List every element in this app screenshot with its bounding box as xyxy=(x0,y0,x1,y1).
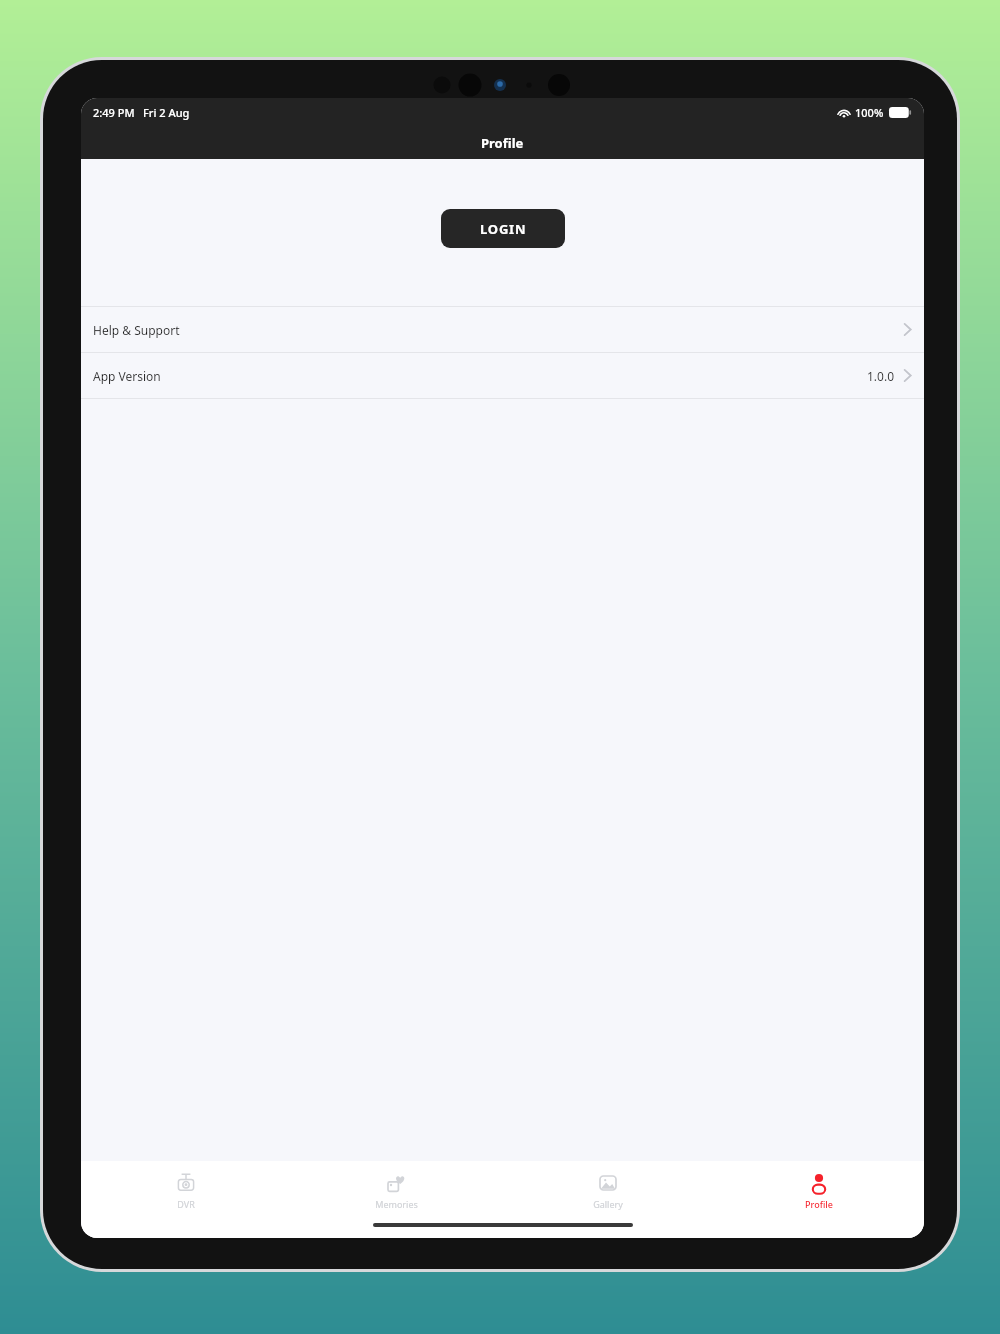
button[interactable]: Gallery xyxy=(502,1161,713,1221)
button[interactable]: Profile xyxy=(713,1161,924,1221)
button[interactable]: Memories xyxy=(291,1161,502,1221)
staticText: 1.0.0 xyxy=(867,368,895,384)
staticText: Profile xyxy=(805,1198,833,1210)
staticText: Profile xyxy=(481,134,524,152)
button[interactable]: DVR xyxy=(81,1161,291,1221)
staticText: Gallery xyxy=(593,1198,623,1210)
staticText: Help & Support xyxy=(93,322,180,338)
button[interactable]: Help & Support xyxy=(81,307,924,352)
button[interactable]: LOGIN xyxy=(441,209,565,248)
staticText: Fri 2 Aug xyxy=(143,105,190,120)
staticText: LOGIN xyxy=(480,220,527,238)
staticText: 100% xyxy=(855,105,884,120)
staticText: 2:49 PM xyxy=(93,105,135,120)
staticText: DVR xyxy=(177,1198,195,1210)
staticText: Memories xyxy=(375,1198,418,1210)
staticText: App Version xyxy=(93,368,161,384)
button[interactable]: App Version xyxy=(81,353,924,398)
